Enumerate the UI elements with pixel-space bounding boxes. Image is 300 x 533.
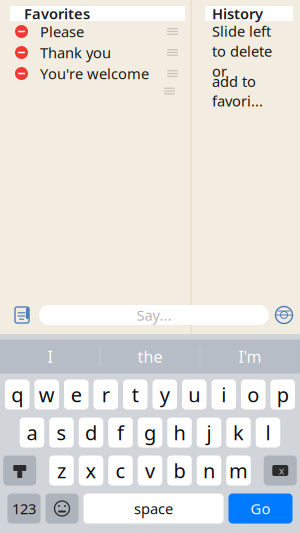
staticText: c [115, 457, 125, 484]
staticText: v [145, 457, 155, 484]
button[interactable]: r [93, 379, 118, 409]
staticText: x [85, 457, 96, 484]
staticText: d [85, 419, 97, 446]
button[interactable]: or [205, 61, 300, 81]
button[interactable]: v [138, 455, 162, 485]
staticText: to delete [212, 41, 272, 61]
staticText: the [137, 346, 162, 367]
staticText: History [212, 4, 263, 23]
staticText: Say... [136, 305, 171, 325]
button[interactable]: Delete [264, 455, 297, 485]
staticText: k [233, 419, 244, 446]
staticText: I'm [238, 346, 261, 367]
staticText: Slide left [212, 21, 271, 41]
staticText: g [144, 419, 156, 446]
button[interactable]: add to favori... [205, 81, 300, 101]
button[interactable]: Compose [9, 302, 35, 328]
button[interactable]: Go [228, 493, 292, 523]
staticText: a [26, 419, 37, 446]
staticText: l [265, 419, 270, 446]
button[interactable]: 123 [7, 493, 40, 523]
staticText: f [117, 419, 124, 446]
staticText: e [71, 381, 82, 408]
button[interactable]: o [241, 379, 265, 409]
staticText: r [102, 381, 110, 408]
staticText: u [188, 381, 200, 408]
staticText: add to favori... [212, 71, 263, 110]
button[interactable]: Please [10, 21, 195, 42]
staticText: s [56, 419, 66, 446]
button[interactable]: f [108, 417, 133, 447]
staticText: Go [250, 499, 270, 518]
staticText: space [134, 499, 173, 518]
button[interactable]: Thank you [10, 42, 195, 63]
staticText: n [203, 457, 215, 484]
button[interactable]: Shift [3, 455, 36, 485]
button[interactable]: I [0, 339, 99, 373]
button[interactable]: a [20, 417, 44, 447]
button[interactable]: the [100, 339, 199, 373]
button[interactable]: d [79, 417, 103, 447]
button[interactable]: space [83, 493, 223, 523]
staticText: m [229, 457, 248, 484]
button[interactable]: I'm [200, 339, 299, 373]
staticText: p [277, 381, 289, 408]
staticText: w [39, 381, 55, 408]
staticText: x [279, 463, 285, 478]
button[interactable]: i [211, 379, 236, 409]
staticText: i [221, 381, 226, 408]
staticText: You're welcome [40, 64, 149, 83]
button[interactable]: z [49, 455, 74, 485]
button[interactable]: g [138, 417, 162, 447]
button[interactable]: n [197, 455, 221, 485]
button[interactable]: s [49, 417, 74, 447]
staticText: 123 [12, 499, 36, 518]
button[interactable]: You're welcome [10, 63, 195, 84]
button[interactable]: m [226, 455, 251, 485]
button[interactable]: p [270, 379, 295, 409]
button[interactable]: u [182, 379, 206, 409]
staticText: h [173, 419, 185, 446]
button[interactable]: q [5, 379, 29, 409]
staticText: Favorites [24, 4, 90, 23]
button[interactable]: x [79, 455, 103, 485]
button[interactable]: h [167, 417, 192, 447]
button[interactable]: l [256, 417, 280, 447]
button[interactable]: j [197, 417, 221, 447]
button[interactable]: y [152, 379, 177, 409]
staticText: y [160, 381, 170, 408]
button[interactable]: c [108, 455, 133, 485]
staticText: t [132, 381, 139, 408]
staticText: q [11, 381, 23, 408]
button[interactable]: Slide left [205, 21, 300, 41]
staticText: Thank you [40, 43, 111, 62]
staticText: j [206, 419, 211, 446]
staticText: or [212, 61, 227, 81]
staticText: Please [40, 22, 84, 41]
staticText: b [173, 457, 185, 484]
staticText: z [57, 457, 66, 484]
button[interactable]: Emoji [45, 493, 78, 523]
button[interactable]: w [34, 379, 59, 409]
button[interactable]: t [123, 379, 147, 409]
button[interactable]: to delete [205, 41, 300, 61]
staticText: o [247, 381, 259, 408]
staticText: I [47, 346, 52, 367]
button[interactable]: b [167, 455, 192, 485]
button[interactable]: k [226, 417, 251, 447]
button[interactable]: e [64, 379, 88, 409]
button[interactable]: Language [271, 302, 297, 328]
